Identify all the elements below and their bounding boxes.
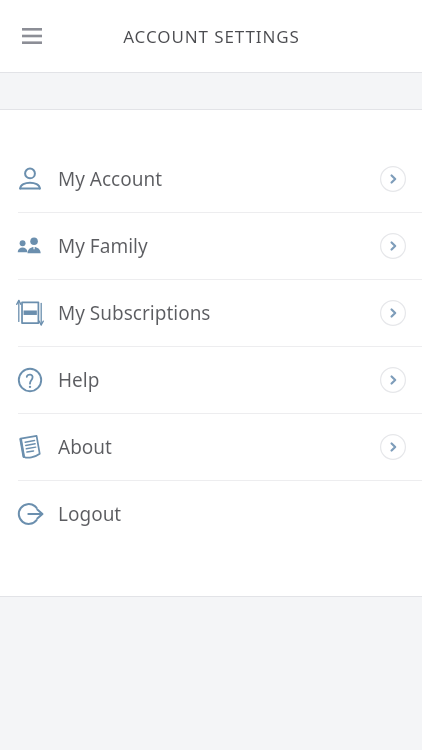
- button[interactable]: My Subscriptions: [0, 280, 422, 346]
- button[interactable]: Logout: [0, 481, 422, 547]
- staticText: Help: [58, 367, 100, 393]
- staticText: My Account: [58, 166, 163, 192]
- button[interactable]: My Account: [0, 146, 422, 212]
- staticText: My Subscriptions: [58, 300, 211, 326]
- button[interactable]: About: [0, 414, 422, 480]
- staticText: ACCOUNT SETTINGS: [123, 25, 300, 48]
- staticText: My Family: [58, 233, 148, 259]
- button[interactable]: Open navigation menu: [8, 12, 56, 60]
- staticText: About: [58, 434, 112, 460]
- button[interactable]: My Family: [0, 213, 422, 279]
- staticText: Logout: [58, 501, 122, 527]
- button[interactable]: Help: [0, 347, 422, 413]
